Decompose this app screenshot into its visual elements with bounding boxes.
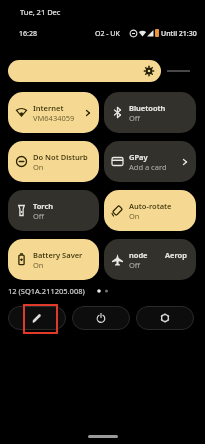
staticText: 16:28 — [19, 29, 37, 39]
staticText: Off — [129, 260, 141, 270]
staticText: Off — [33, 211, 45, 221]
button[interactable]: Torch — [8, 190, 99, 231]
button[interactable]: node Aerop — [104, 239, 196, 280]
button[interactable] — [136, 306, 194, 330]
button[interactable] — [72, 306, 130, 330]
staticText: On — [33, 162, 44, 172]
staticText: On — [129, 211, 140, 221]
staticText: Torch — [33, 201, 54, 211]
button[interactable] — [8, 60, 161, 82]
staticText: Bluetooth — [129, 103, 166, 113]
staticText: Add a card — [129, 162, 167, 172]
staticText: node Aerop — [129, 250, 187, 260]
staticText: VM6434059 — [33, 113, 75, 123]
button[interactable]: Bluetooth — [104, 92, 196, 133]
staticText: O2 - UK — [95, 29, 120, 39]
staticText: Off — [129, 113, 141, 123]
button[interactable]: Do Not Disturb — [8, 141, 99, 182]
staticText: 12 (SQ1A.211205.008) — [8, 286, 85, 296]
button[interactable]: Battery Saver — [8, 239, 99, 280]
staticText: Battery Saver — [33, 250, 83, 260]
button[interactable] — [8, 306, 66, 330]
button[interactable]: Auto-rotate — [104, 190, 196, 231]
staticText: Auto-rotate — [129, 201, 172, 211]
staticText: Internet — [33, 103, 64, 113]
staticText: Until 21:30 — [161, 29, 197, 39]
button[interactable]: GPay — [104, 141, 196, 182]
staticText: GPay — [129, 152, 148, 162]
staticText: On — [33, 260, 44, 270]
staticText: Do Not Disturb — [33, 152, 88, 162]
button[interactable]: Internet — [8, 92, 99, 133]
staticText: Tue, 21 Dec — [20, 7, 61, 17]
